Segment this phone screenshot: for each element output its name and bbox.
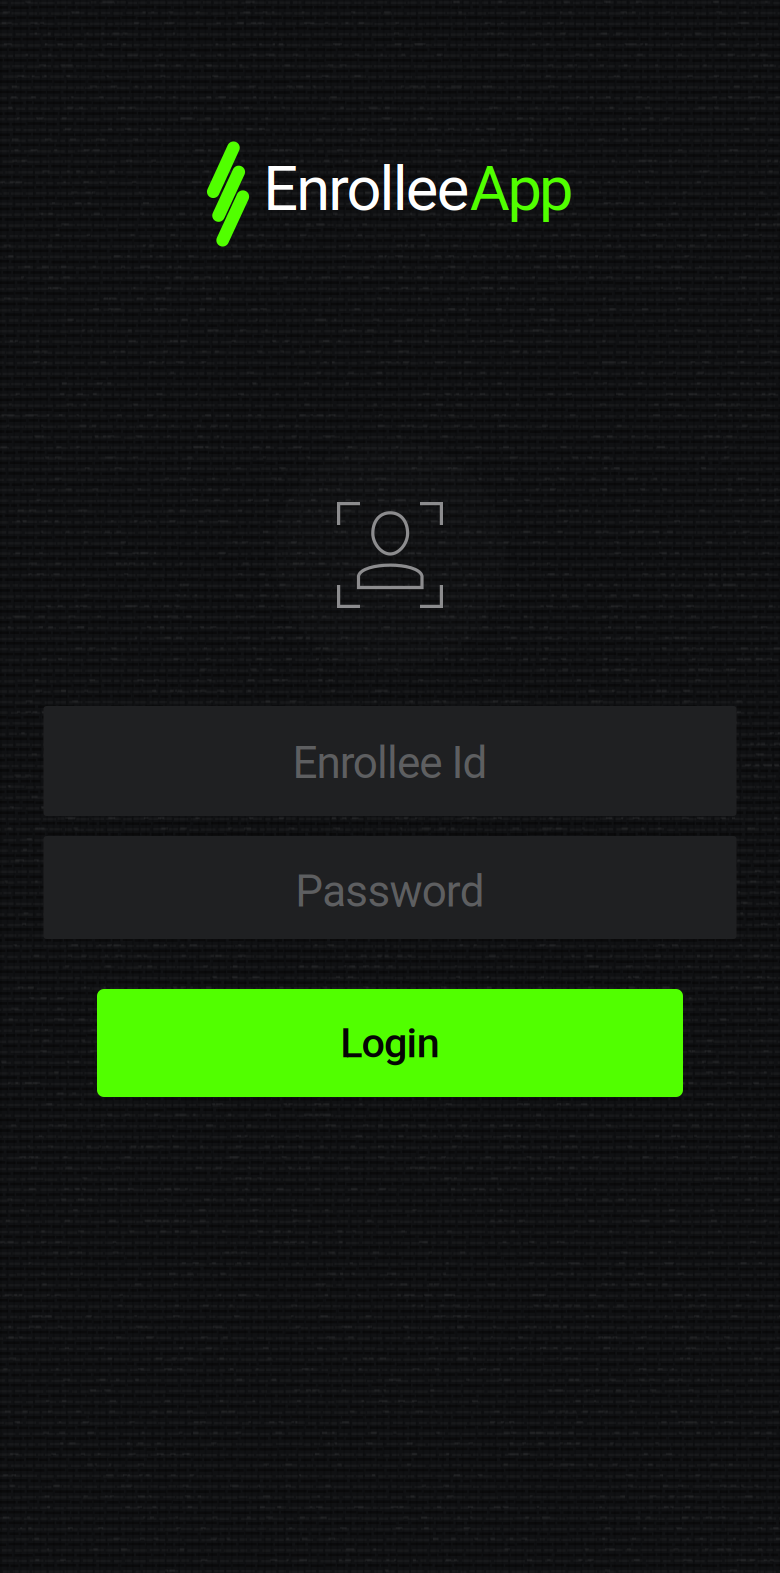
button[interactable]: Enrollee Id <box>43 706 736 816</box>
staticText: App <box>470 153 573 225</box>
staticText: Login <box>340 1019 440 1067</box>
button[interactable]: Login <box>97 989 683 1097</box>
button[interactable]: Sign in with face scan <box>270 502 510 608</box>
staticText: Enrollee Id <box>292 737 487 789</box>
staticText: Password <box>295 866 485 917</box>
button[interactable]: Password <box>43 836 736 939</box>
staticText: Enrollee <box>263 153 470 225</box>
